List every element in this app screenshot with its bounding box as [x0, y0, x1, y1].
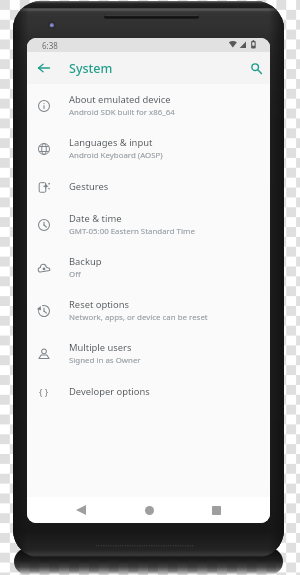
staticText: Reset options [69, 298, 130, 311]
staticText: Multiple users [69, 341, 132, 354]
staticText: Backup [69, 255, 102, 268]
staticText: Network, apps, or device can be reset [69, 312, 208, 323]
button[interactable]: About emulated device [27, 84, 270, 127]
button[interactable]: Languages & input [27, 127, 270, 170]
staticText: About emulated device [69, 93, 171, 106]
staticText: 6:38 [42, 40, 58, 51]
staticText: Gestures [69, 180, 109, 193]
button[interactable]: Backup [27, 246, 270, 289]
staticText: { } [39, 386, 49, 398]
staticText: Languages & input [69, 136, 153, 149]
staticText: GMT-05:00 Eastern Standard Time [69, 226, 195, 237]
staticText: Signed in as Owner [69, 355, 141, 366]
button[interactable]: Gestures [27, 170, 270, 203]
button[interactable]: Search [244, 56, 268, 80]
staticText: Date & time [69, 212, 122, 225]
button[interactable]: Home [139, 500, 159, 520]
button[interactable]: Recents [206, 500, 226, 520]
staticText: Developer options [69, 385, 150, 398]
staticText: Off [69, 269, 81, 280]
staticText: System [69, 60, 113, 77]
button[interactable]: Back [32, 56, 56, 80]
button[interactable]: Reset options [27, 289, 270, 332]
staticText: Android SDK built for x86_64 [69, 107, 175, 118]
button[interactable]: Date & time [27, 203, 270, 246]
button[interactable]: { } [27, 375, 270, 408]
button[interactable]: Back [71, 500, 91, 520]
staticText: Android Keyboard (AOSP) [69, 150, 163, 161]
button[interactable]: Multiple users [27, 332, 270, 375]
